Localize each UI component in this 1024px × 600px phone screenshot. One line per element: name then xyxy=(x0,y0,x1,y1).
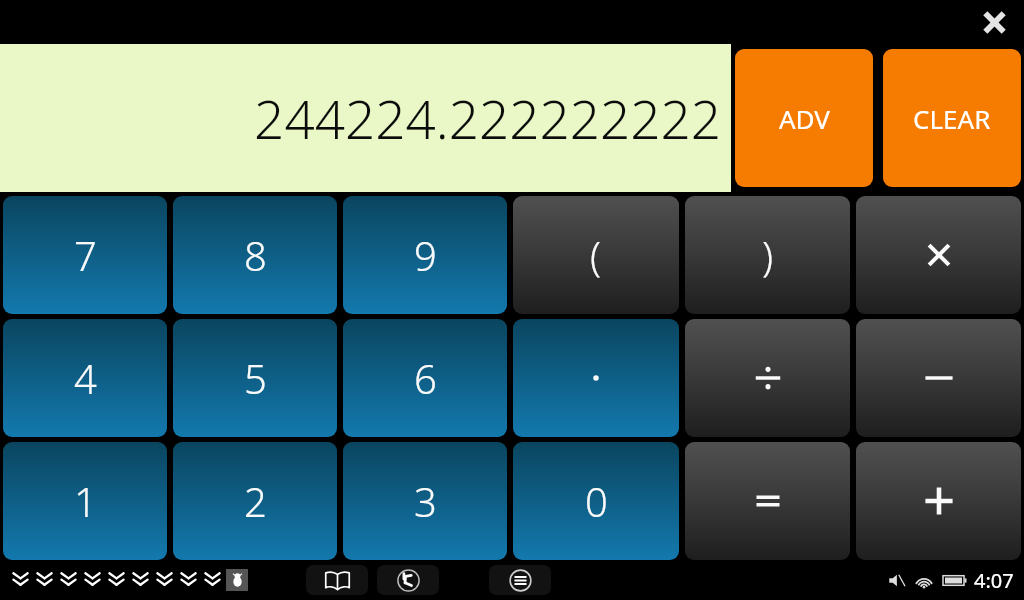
staticText: 8 xyxy=(244,228,267,282)
button[interactable]: 6 xyxy=(343,319,507,437)
button[interactable]: CLEAR xyxy=(883,49,1021,187)
button[interactable]: ADV xyxy=(735,49,873,187)
staticText: 6 xyxy=(414,351,437,405)
button[interactable] xyxy=(513,319,679,437)
button[interactable]: Debug xyxy=(226,569,248,591)
button[interactable]: Close xyxy=(976,4,1012,40)
button[interactable]: 5 xyxy=(173,319,337,437)
button[interactable]: 2 xyxy=(173,442,337,560)
staticText: 2 xyxy=(244,474,267,528)
staticText: 5 xyxy=(244,351,267,405)
button[interactable] xyxy=(856,319,1021,437)
button[interactable]: 244224.222222222 xyxy=(0,44,731,192)
staticText: 0 xyxy=(585,474,608,528)
staticText: 4 xyxy=(74,351,97,405)
button[interactable]: ( xyxy=(513,196,679,314)
staticText: 4:07 xyxy=(974,567,1014,594)
button[interactable]: 9 xyxy=(343,196,507,314)
staticText: CLEAR xyxy=(913,101,991,136)
button[interactable]: Back xyxy=(377,565,439,595)
staticText: 1 xyxy=(74,474,97,528)
staticText: ) xyxy=(762,228,774,282)
button[interactable] xyxy=(856,442,1021,560)
button[interactable] xyxy=(856,196,1021,314)
button[interactable]: ) xyxy=(685,196,850,314)
button[interactable]: 3 xyxy=(343,442,507,560)
button[interactable]: 8 xyxy=(173,196,337,314)
button[interactable]: Bookmarks xyxy=(306,565,368,595)
staticText: 3 xyxy=(414,474,437,528)
staticText: 9 xyxy=(414,228,437,282)
staticText: ADV xyxy=(779,101,830,136)
button[interactable]: Menu xyxy=(489,565,551,595)
button[interactable]: 7 xyxy=(3,196,167,314)
button[interactable]: 1 xyxy=(3,442,167,560)
staticText: 244224.222222222 xyxy=(0,82,721,154)
staticText: 7 xyxy=(74,228,97,282)
button[interactable]: 4 xyxy=(3,319,167,437)
button[interactable] xyxy=(685,319,850,437)
staticText: ( xyxy=(590,228,602,282)
button[interactable] xyxy=(685,442,850,560)
button[interactable]: 0 xyxy=(513,442,679,560)
